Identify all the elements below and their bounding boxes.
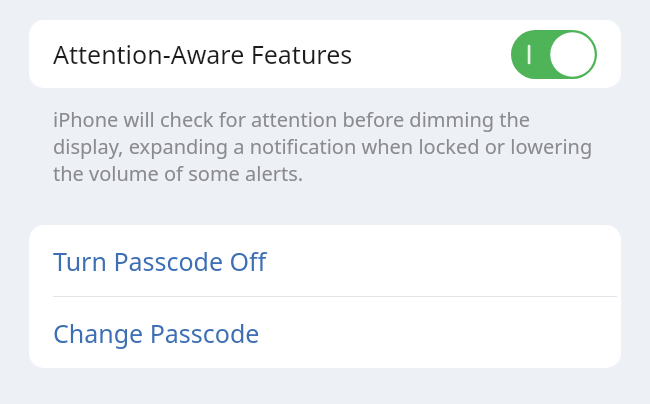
button[interactable]: Change Passcode — [29, 297, 621, 368]
staticText: Attention-Aware Features — [53, 37, 353, 71]
button[interactable]: Turn Passcode Off — [29, 225, 621, 296]
button[interactable]: Attention-Aware Features — [29, 20, 621, 88]
staticText: Change Passcode — [53, 316, 260, 350]
button[interactable]: Attention-Aware Features toggle, on — [511, 30, 597, 79]
staticText: Turn Passcode Off — [53, 244, 267, 278]
staticText: iPhone will check for attention before d… — [53, 106, 597, 187]
